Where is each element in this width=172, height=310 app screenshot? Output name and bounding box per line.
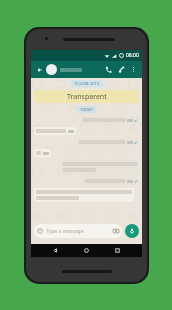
staticText: 10 JUNE 2016	[74, 81, 100, 86]
other: Camera	[113, 228, 119, 234]
staticText: TODAY	[80, 107, 93, 112]
button[interactable]: Back	[49, 244, 62, 257]
button[interactable]	[83, 177, 139, 185]
button[interactable]: Call	[102, 63, 115, 76]
button[interactable]	[61, 160, 139, 174]
button[interactable]	[34, 149, 51, 157]
button[interactable]: Home	[80, 244, 93, 257]
button[interactable]: Attach	[115, 63, 128, 76]
button[interactable]	[34, 127, 76, 135]
button[interactable]	[34, 188, 134, 202]
button[interactable]: Voice message	[125, 224, 139, 238]
button[interactable]: Transparent	[34, 90, 139, 103]
staticText: Type a message	[46, 228, 84, 235]
button[interactable]: Back	[34, 64, 45, 75]
button[interactable]	[81, 116, 139, 124]
staticText: Transparent	[67, 92, 107, 102]
button[interactable]	[77, 138, 139, 146]
button[interactable]: Type a message	[34, 224, 122, 238]
button[interactable]: More options	[128, 64, 139, 75]
button[interactable]	[46, 64, 102, 75]
button[interactable]: Recents	[111, 244, 124, 257]
staticText: 06:00	[126, 52, 139, 59]
